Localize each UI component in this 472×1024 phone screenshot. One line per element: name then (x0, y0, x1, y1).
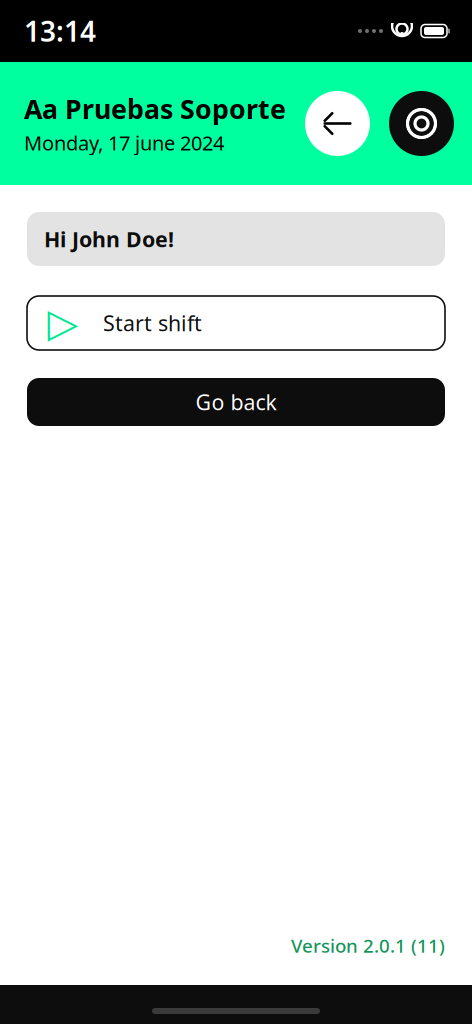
button[interactable]: Back (305, 91, 370, 156)
staticText: Go back (195, 388, 276, 416)
staticText: Start shift (103, 309, 202, 337)
staticText: Hi John Doe! (44, 225, 174, 253)
button[interactable]: ▷ (27, 296, 445, 350)
staticText: Monday, 17 june 2024 (24, 129, 224, 156)
staticText: Aa Pruebas Soporte (24, 91, 286, 126)
button[interactable]: Settings (389, 91, 454, 156)
button[interactable]: Go back (27, 378, 445, 426)
staticText: ▷ (47, 300, 78, 346)
staticText: Version 2.0.1 (11) (291, 933, 445, 958)
staticText: 13:14 (24, 12, 96, 50)
